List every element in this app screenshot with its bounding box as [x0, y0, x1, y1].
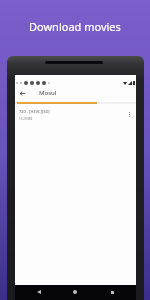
staticText: 720 - [HEVC][SD]: [19, 109, 50, 114]
button[interactable]: Recents: [107, 287, 117, 297]
button[interactable]: Back: [34, 287, 44, 297]
staticText: 13.29 MB: [19, 117, 33, 121]
staticText: Mosul: [39, 89, 57, 97]
button[interactable]: Home: [70, 287, 80, 297]
staticText: Download movies: [29, 19, 121, 34]
button[interactable]: More options: [123, 108, 135, 120]
button[interactable]: Navigate up: [17, 88, 28, 99]
